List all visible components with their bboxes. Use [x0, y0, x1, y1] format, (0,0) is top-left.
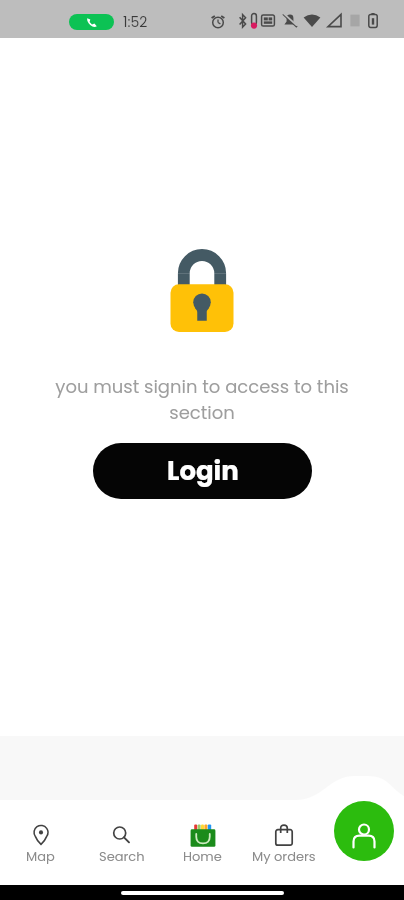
- button[interactable]: Map: [0, 821, 81, 885]
- staticText: Search: [99, 847, 145, 865]
- staticText: 1:52: [123, 12, 148, 32]
- staticText: Map: [26, 847, 55, 865]
- button[interactable]: My orders: [243, 821, 324, 885]
- button[interactable]: Search: [81, 821, 162, 885]
- staticText: My orders: [252, 847, 316, 865]
- button[interactable]: Profile: [334, 801, 394, 861]
- staticText: Home: [183, 847, 222, 865]
- staticText: Login: [167, 453, 239, 489]
- button[interactable]: Login: [93, 443, 312, 499]
- staticText: you must signin to access to this sectio…: [47, 374, 357, 425]
- button[interactable]: Home: [162, 821, 243, 885]
